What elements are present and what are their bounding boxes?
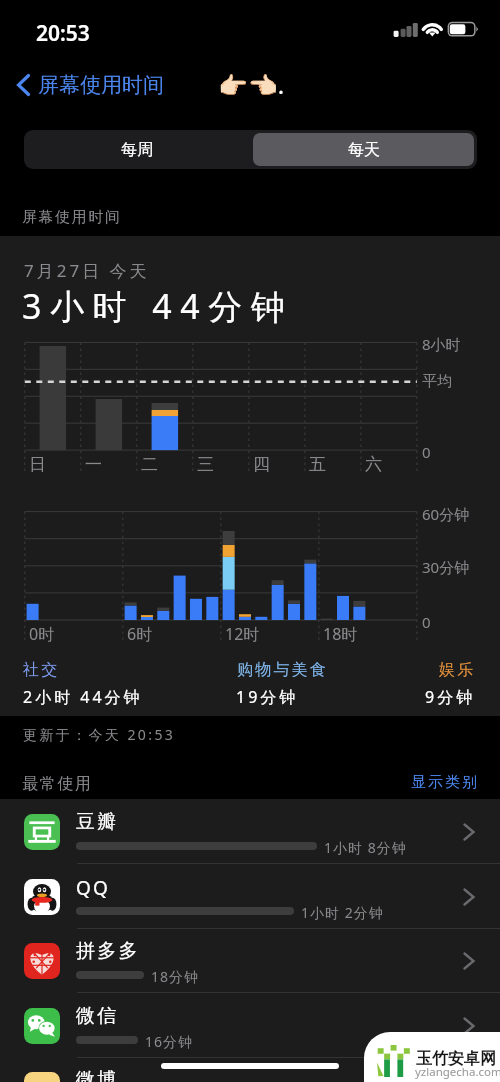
staticText: 每周: [121, 140, 153, 160]
staticText: 社交: [23, 660, 60, 680]
staticText: 60分钟: [422, 504, 470, 524]
staticText: 19分钟: [236, 686, 299, 708]
staticText: 购物与美食: [236, 660, 327, 680]
staticText: 玉竹安卓网: [416, 1049, 496, 1069]
staticText: 更新于：今天 20:53: [23, 725, 176, 744]
staticText: 1小时 8分钟: [324, 838, 407, 857]
staticText: 显示类别: [410, 773, 478, 792]
staticText: 屏幕使用时间: [38, 72, 164, 98]
button[interactable]: 娱乐: [373, 660, 476, 708]
staticText: 一: [85, 454, 102, 475]
staticText: 屏幕使用时间: [22, 208, 122, 227]
staticText: 9分钟: [425, 686, 476, 708]
staticText: 0: [422, 442, 431, 462]
staticText: 0时: [29, 623, 55, 645]
staticText: 四: [253, 454, 270, 475]
staticText: 六: [365, 454, 382, 475]
staticText: 平均: [422, 372, 452, 391]
staticText: 2小时 44分钟: [23, 686, 143, 708]
button[interactable]: 微博: [0, 1057, 500, 1082]
other: 查看详情: [463, 823, 475, 841]
staticText: 16分钟: [145, 1032, 194, 1051]
staticText: 1小时 2分钟: [301, 903, 384, 922]
staticText: 30分钟: [422, 557, 470, 577]
staticText: 0: [422, 612, 431, 632]
staticText: 日: [29, 454, 46, 475]
staticText: 3小时 44分钟: [22, 283, 294, 329]
staticText: 最常使用: [22, 774, 93, 794]
staticText: 拼多多: [76, 939, 140, 963]
staticText: 8小时: [422, 334, 461, 354]
staticText: 👉🏻👈🏻.: [218, 68, 285, 101]
staticText: 7月27日 今天: [24, 259, 150, 282]
staticText: 6时: [127, 623, 153, 645]
staticText: 每天: [348, 140, 380, 160]
staticText: 18时: [323, 623, 358, 645]
button[interactable]: 显示类别: [410, 773, 478, 792]
button[interactable]: 每周: [24, 130, 250, 169]
staticText: QQ: [76, 875, 111, 901]
staticText: 二: [141, 454, 158, 475]
button[interactable]: 屏幕使用时间: [16, 72, 164, 98]
button[interactable]: 微信: [0, 993, 500, 1058]
staticText: 豆瓣: [76, 810, 119, 834]
staticText: 三: [197, 454, 214, 475]
button[interactable]: 豆瓣: [0, 799, 500, 864]
staticText: 五: [309, 454, 326, 475]
staticText: 微信: [76, 1004, 119, 1028]
staticText: 20:53: [36, 19, 90, 48]
staticText: 娱乐: [439, 660, 476, 680]
button[interactable]: 每天: [253, 133, 474, 166]
staticText: 12时: [225, 623, 260, 645]
button[interactable]: 社交: [23, 660, 143, 708]
other: 查看详情: [463, 888, 475, 906]
staticText: 18分钟: [151, 967, 200, 986]
button[interactable]: 购物与美食: [236, 660, 327, 708]
other: 查看详情: [463, 952, 475, 970]
staticText: yzlangecha.com: [415, 1064, 500, 1080]
button[interactable]: QQ: [0, 864, 500, 929]
button[interactable]: 拼多多: [0, 928, 500, 993]
other: 查看详情: [463, 1017, 475, 1035]
staticText: 微博: [76, 1068, 119, 1082]
